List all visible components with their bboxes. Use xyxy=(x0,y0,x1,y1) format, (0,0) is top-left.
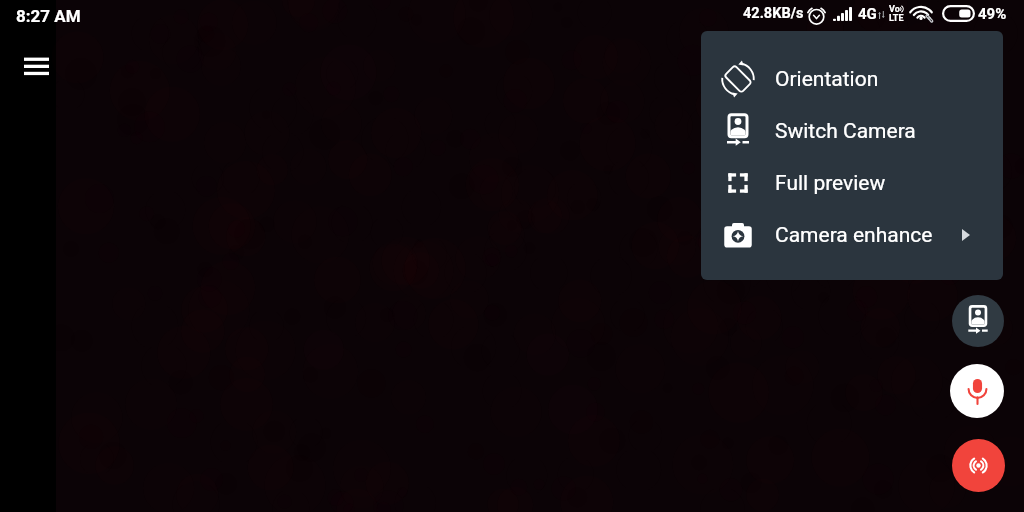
button[interactable]: Full preview xyxy=(701,157,1003,209)
button[interactable]: Switch camera xyxy=(952,295,1004,347)
staticText: Vo xyxy=(889,4,900,15)
staticText: Switch Camera xyxy=(775,119,916,144)
button[interactable]: Switch Camera xyxy=(701,105,1003,157)
staticText: Full preview xyxy=(775,171,886,196)
staticText: LTE xyxy=(889,13,904,24)
button[interactable]: Menu xyxy=(14,44,58,88)
button[interactable]: Camera enhance xyxy=(701,209,1003,261)
staticText: 42.8KB/s xyxy=(743,5,804,22)
staticText: 49% xyxy=(978,5,1007,23)
button[interactable]: Start recording xyxy=(952,439,1005,492)
button[interactable]: Orientation xyxy=(701,53,1003,105)
button[interactable]: Microphone xyxy=(950,364,1004,418)
staticText: 4G xyxy=(858,5,877,23)
staticText: 8:27 AM xyxy=(16,6,81,26)
staticText: Camera enhance xyxy=(775,223,933,248)
staticText: Orientation xyxy=(775,67,879,92)
